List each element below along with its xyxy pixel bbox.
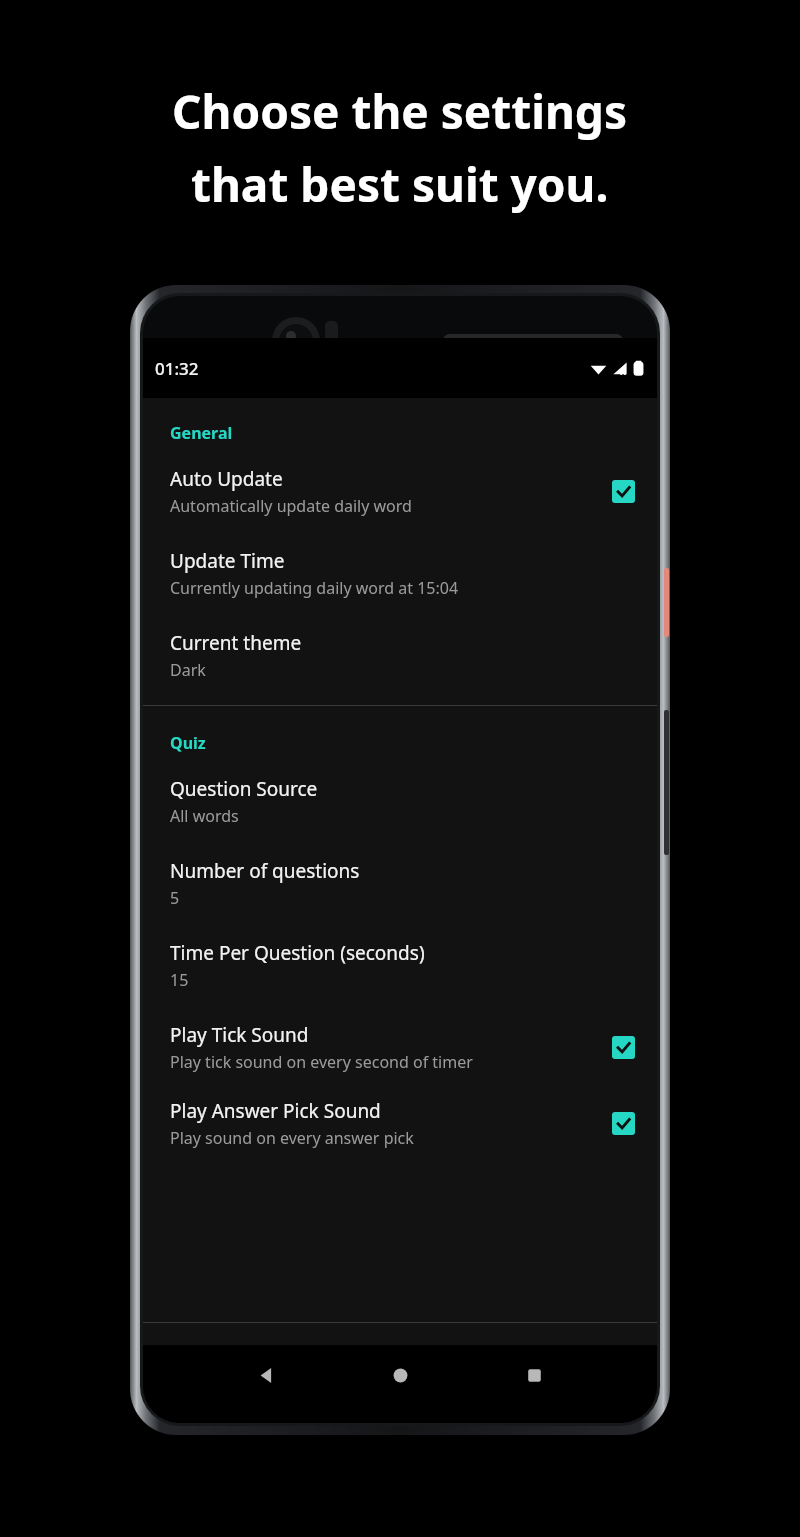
staticText: All words [170, 805, 239, 827]
button[interactable]: Volume [664, 710, 669, 855]
staticText: Quiz [170, 732, 206, 754]
staticText: that best suit you. [191, 153, 609, 216]
staticText: Dark [170, 659, 206, 681]
button[interactable]: Play Answer Pick Sound [143, 1098, 657, 1149]
button[interactable]: Play Tick Sound [143, 1022, 657, 1073]
staticText: Question Source [170, 776, 318, 802]
button[interactable]: Auto Update [143, 466, 657, 517]
staticText: Update Time [170, 548, 285, 574]
staticText: Currently updating daily word at 15:04 [170, 577, 459, 599]
staticText: Time Per Question (seconds) [170, 940, 425, 966]
button[interactable]: Toggle Play Tick Sound [612, 1036, 635, 1059]
button[interactable]: Recent apps [467, 1365, 601, 1386]
button[interactable]: Time Per Question (seconds) [143, 940, 657, 991]
button[interactable]: Toggle Auto Update [612, 480, 635, 503]
staticText: Play Tick Sound [170, 1022, 309, 1048]
button[interactable]: Number of questions [143, 858, 657, 909]
staticText: Current theme [170, 630, 302, 656]
button[interactable]: Power [664, 568, 669, 637]
button[interactable]: Home [333, 1365, 467, 1386]
button[interactable]: Back [199, 1365, 333, 1386]
staticText: General [170, 422, 233, 444]
staticText: Play Answer Pick Sound [170, 1098, 381, 1124]
staticText: 15 [170, 969, 189, 991]
staticText: Auto Update [170, 466, 283, 492]
staticText: Play tick sound on every second of timer [170, 1051, 473, 1073]
staticText: Choose the settings [172, 80, 628, 143]
staticText: Play sound on every answer pick [170, 1127, 414, 1149]
staticText: Automatically update daily word [170, 495, 412, 517]
staticText: 5 [170, 887, 180, 909]
button[interactable]: Update Time [143, 548, 657, 599]
button[interactable]: Current theme [143, 630, 657, 681]
button[interactable]: Question Source [143, 776, 657, 827]
button[interactable]: Toggle Play Answer Pick Sound [612, 1112, 635, 1135]
staticText: Number of questions [170, 858, 360, 884]
staticText: 01:32 [155, 357, 199, 380]
